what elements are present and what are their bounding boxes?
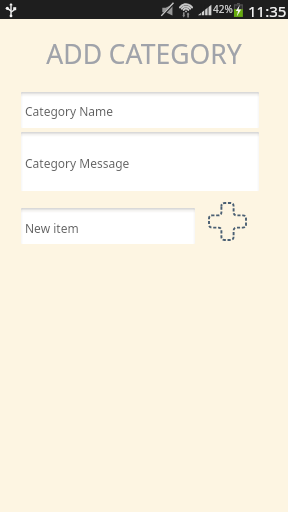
staticText: Category Message [25, 155, 130, 171]
other: Battery charging [233, 3, 244, 17]
button[interactable]: New item [21, 208, 195, 244]
button[interactable]: Category Name [21, 92, 259, 128]
staticText: ADD CATEGORY [0, 36, 288, 72]
staticText: 11:35 [248, 1, 287, 20]
staticText: Category Name [25, 103, 114, 119]
button[interactable]: Add item [205, 199, 250, 244]
staticText: New item [25, 220, 79, 236]
other: Silent mode [161, 3, 174, 17]
other: Wi-Fi [178, 2, 194, 18]
staticText: 42% [213, 2, 233, 16]
other: Mobile signal [197, 3, 213, 17]
button[interactable]: Category Message [21, 132, 259, 191]
other: USB connected [6, 3, 16, 17]
